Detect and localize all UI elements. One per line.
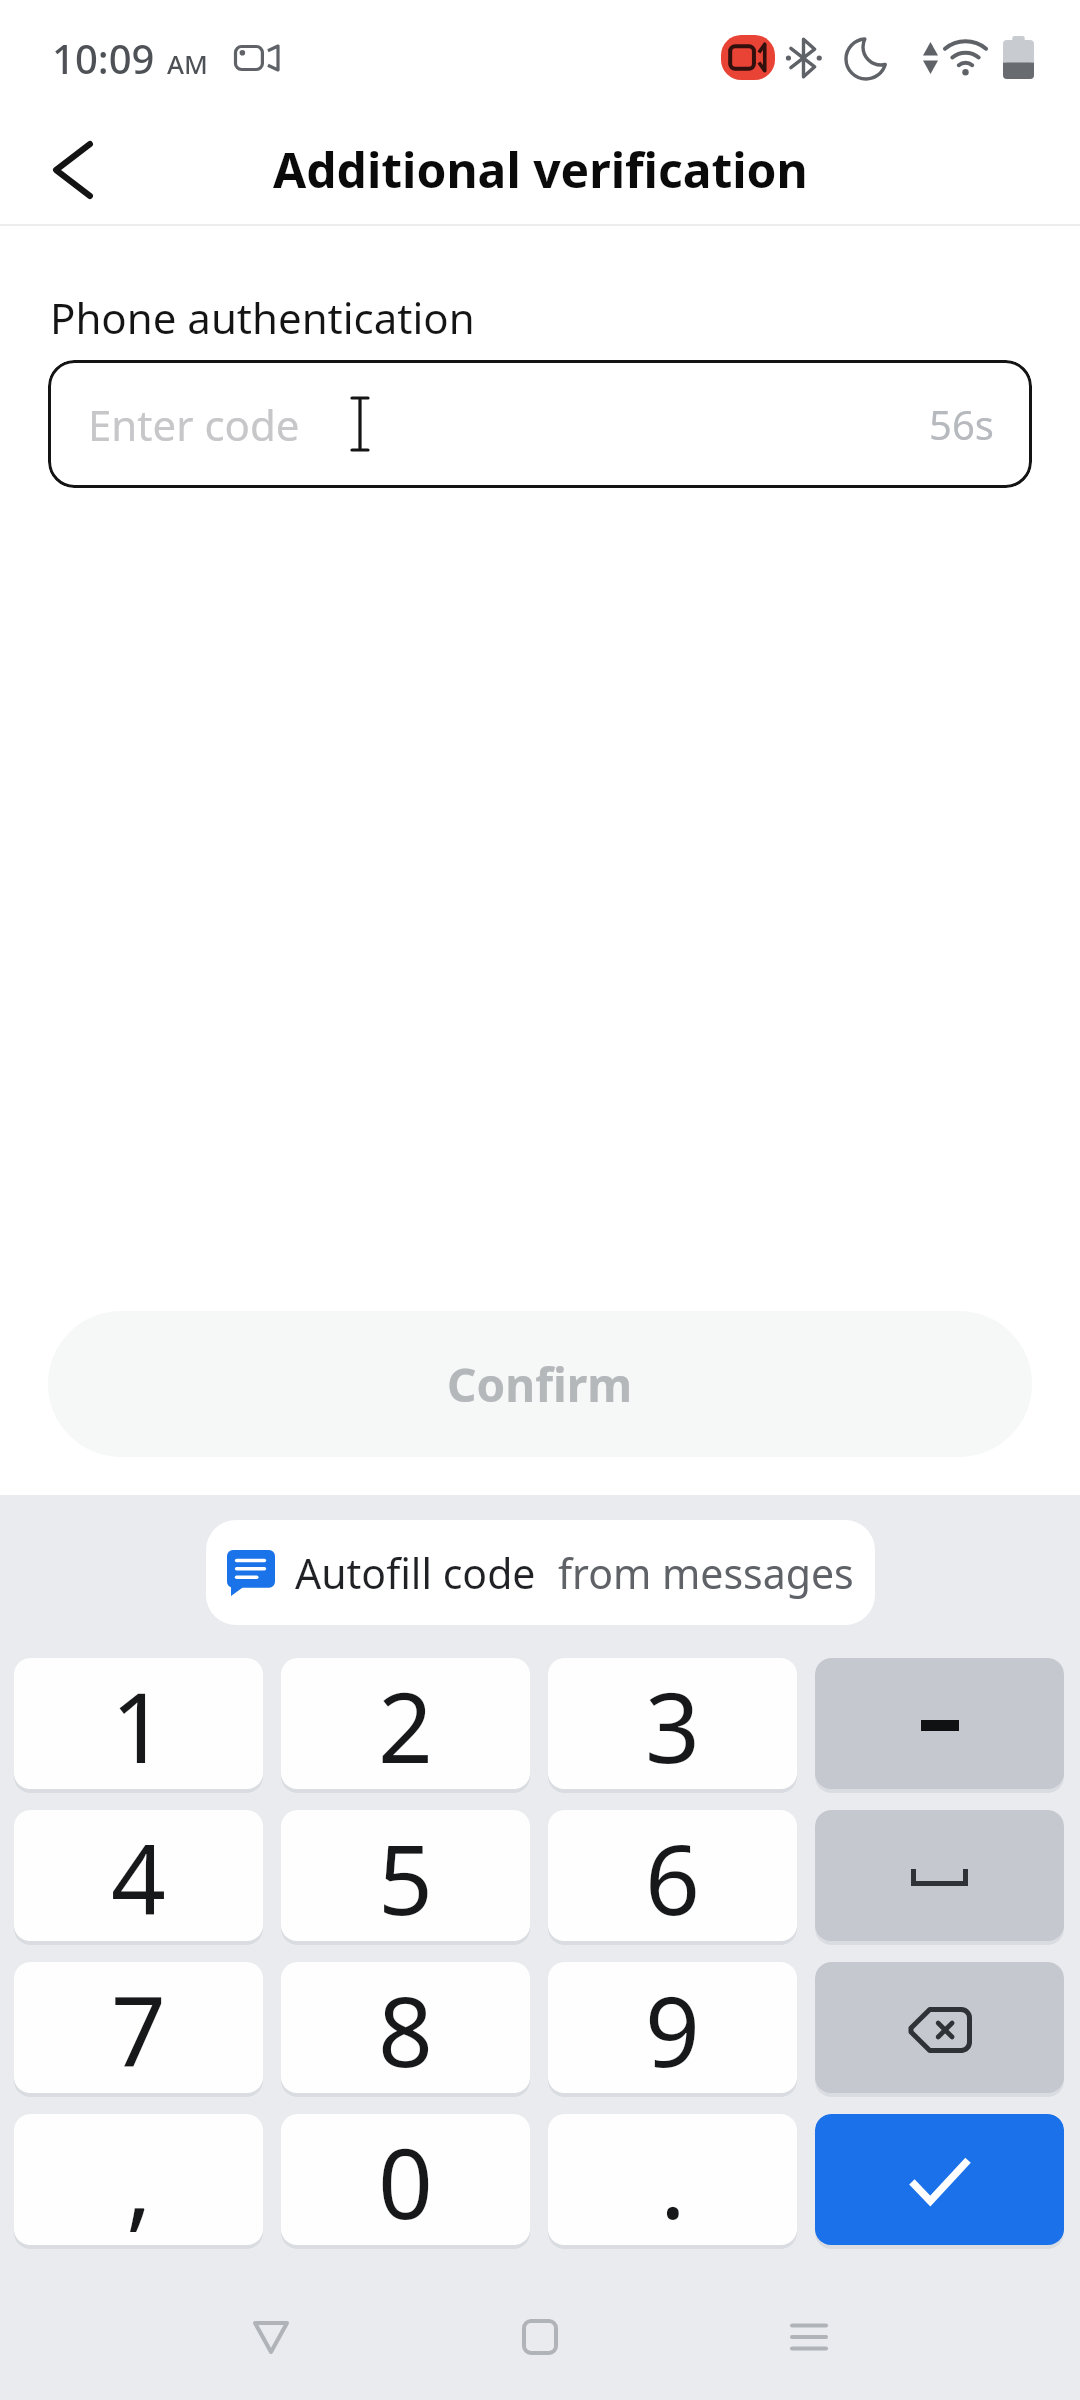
- staticText: Phone authentication: [50, 289, 475, 346]
- button[interactable]: 5: [281, 1810, 530, 1945]
- button[interactable]: [522, 2319, 558, 2355]
- button[interactable]: ,: [14, 2114, 263, 2249]
- staticText: 7: [111, 1964, 166, 2095]
- button[interactable]: 2: [281, 1658, 530, 1793]
- button[interactable]: 4: [14, 1810, 263, 1945]
- button[interactable]: [790, 2322, 828, 2352]
- button[interactable]: 1: [14, 1658, 263, 1793]
- button[interactable]: [36, 134, 108, 206]
- staticText: 2: [378, 1660, 433, 1791]
- staticText: 8: [378, 1964, 433, 2095]
- staticText: Enter code: [88, 396, 300, 453]
- staticText: 4: [111, 1812, 166, 1943]
- staticText: Additional verification: [273, 137, 808, 202]
- button[interactable]: 0: [281, 2114, 530, 2249]
- staticText: 10:09: [52, 31, 155, 85]
- staticText: AM: [167, 46, 208, 81]
- staticText: 5: [378, 1812, 433, 1943]
- button[interactable]: 8: [281, 1962, 530, 2097]
- staticText: from messages: [558, 1545, 854, 1601]
- button[interactable]: .: [548, 2114, 797, 2249]
- button[interactable]: 6: [548, 1810, 797, 1945]
- button[interactable]: 3: [548, 1658, 797, 1793]
- staticText: 56s: [929, 397, 994, 451]
- staticText: Autofill code: [295, 1545, 536, 1601]
- button[interactable]: Autofill code: [206, 1520, 875, 1625]
- staticText: 1: [111, 1660, 166, 1791]
- button[interactable]: Enter code: [48, 360, 1032, 488]
- staticText: ,: [126, 2116, 152, 2247]
- button[interactable]: [815, 1810, 1064, 1945]
- button[interactable]: [815, 1658, 1064, 1793]
- staticText: 6: [645, 1812, 700, 1943]
- button[interactable]: 7: [14, 1962, 263, 2097]
- button[interactable]: [815, 2114, 1064, 2249]
- button[interactable]: [815, 1962, 1064, 2097]
- button[interactable]: Confirm: [48, 1311, 1032, 1457]
- button[interactable]: 9: [548, 1962, 797, 2097]
- staticText: .: [660, 2116, 686, 2247]
- staticText: 0: [378, 2116, 433, 2247]
- staticText: 9: [645, 1964, 700, 2095]
- staticText: Confirm: [447, 1353, 633, 1416]
- staticText: 3: [645, 1660, 700, 1791]
- button[interactable]: [252, 2320, 290, 2355]
